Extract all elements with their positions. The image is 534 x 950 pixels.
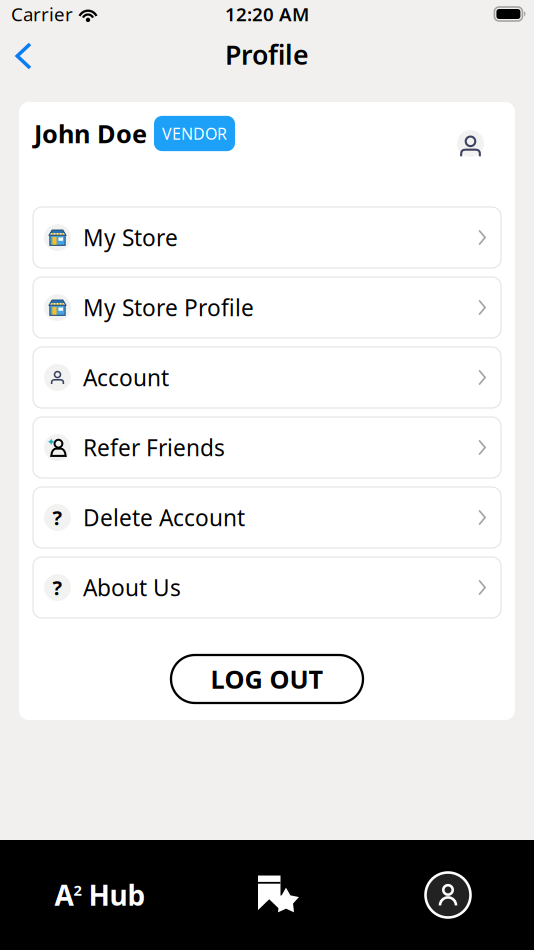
button[interactable]: Refer Friends [33, 417, 501, 478]
button[interactable]: Profile [356, 840, 534, 950]
staticText: ? [52, 504, 62, 531]
staticText: VENDOR [162, 123, 227, 144]
button[interactable]: Account [33, 347, 501, 408]
staticText: About Us [83, 572, 181, 602]
staticText: A [54, 876, 73, 914]
staticText: My Store Profile [83, 292, 254, 322]
staticText: LOG OUT [210, 662, 323, 696]
staticText: ? [52, 574, 62, 601]
staticText: My Store [83, 222, 178, 252]
button[interactable]: Back [0, 27, 50, 77]
staticText: Profile [225, 37, 309, 72]
staticText: John Doe [34, 117, 147, 150]
button[interactable]: My Store Profile [33, 277, 501, 338]
staticText: Refer Friends [83, 432, 225, 462]
staticText: Hub [81, 876, 145, 914]
button[interactable]: LOG OUT [171, 655, 363, 703]
button[interactable]: A [0, 840, 178, 950]
button[interactable]: Saved [178, 840, 356, 950]
button[interactable]: ? [33, 487, 501, 548]
staticText: 2 [73, 880, 81, 900]
button[interactable]: ? [33, 557, 501, 618]
button[interactable]: My Store [33, 207, 501, 268]
staticText: Account [83, 362, 169, 392]
staticText: Carrier [11, 2, 73, 26]
staticText: 12:20 AM [225, 2, 309, 26]
staticText: Delete Account [83, 502, 245, 532]
